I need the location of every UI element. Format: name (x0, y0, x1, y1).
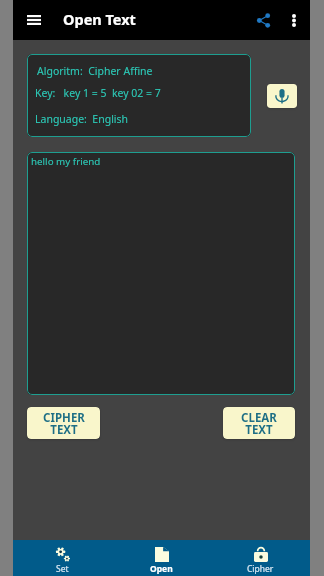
button[interactable]: hello my friend (27, 152, 295, 395)
button[interactable]: Open (112, 540, 211, 576)
button[interactable]: Set (13, 540, 112, 576)
button[interactable]: Voice input (267, 84, 297, 108)
staticText: Open Text (63, 9, 136, 29)
staticText: Language: English (35, 112, 129, 126)
button[interactable]: Menu (17, 3, 51, 37)
staticText: CLEAR TEXT (241, 410, 277, 437)
button[interactable]: CLEAR TEXT (223, 407, 295, 439)
staticText: Set (56, 563, 69, 575)
button[interactable]: CIPHER TEXT (27, 407, 100, 439)
staticText: hello my friend (31, 155, 101, 168)
button[interactable]: More options (278, 4, 310, 36)
staticText: Open (150, 563, 173, 575)
staticText: CIPHER TEXT (43, 410, 85, 437)
button[interactable]: Share (246, 3, 280, 37)
staticText: Key: key 1 = 5 key 02 = 7 (35, 86, 161, 100)
staticText: Algoritm: Cipher Affine (37, 64, 153, 78)
button[interactable]: Algoritm: Cipher Affine (27, 54, 251, 137)
staticText: Cipher (247, 563, 274, 575)
button[interactable]: Cipher (211, 540, 310, 576)
